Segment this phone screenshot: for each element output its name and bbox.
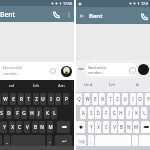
button[interactable]: Z [33,93,39,105]
staticText: A [82,110,85,116]
button[interactable]: W [2,93,8,105]
button[interactable]: Q [76,93,82,105]
button[interactable]: Call [138,10,150,22]
button[interactable]: X [95,121,101,133]
button[interactable]: Y [88,121,94,133]
button[interactable]: F [14,107,20,119]
button[interactable]: Und [76,78,100,92]
button[interactable]: S [0,107,4,119]
button[interactable]: . [132,135,138,147]
button[interactable]: D [95,107,101,119]
staticText: I [50,96,52,102]
button[interactable]: P [63,93,69,105]
button[interactable]: C [103,121,109,133]
button[interactable]: Shift [0,121,1,133]
staticText: Q [77,96,81,102]
staticText: , [6,139,8,144]
button[interactable] [139,135,150,147]
button[interactable]: Backspace [57,121,70,133]
button[interactable]: M [47,121,53,133]
button[interactable]: Emoji [48,66,58,76]
button[interactable]: . [47,135,52,147]
button[interactable]: Backspace [141,121,150,133]
button[interactable]: Back [76,10,88,22]
staticText: senden [3,71,18,77]
button[interactable]: nd [0,80,24,92]
button[interactable]: Z [114,93,120,105]
button[interactable]: I [48,93,54,105]
button[interactable]: I [130,93,136,105]
button[interactable]: L [51,107,57,119]
button[interactable]: T [107,93,113,105]
button[interactable]: Call [50,8,63,21]
button[interactable] [0,135,2,147]
button[interactable]: P [145,93,150,105]
button[interactable]: L [141,107,147,119]
button[interactable]: Y [1,121,7,133]
button[interactable]: O [55,93,61,105]
button[interactable]: N [39,121,45,133]
staticText: P [65,96,68,102]
button[interactable]: Emoji [128,66,136,74]
button[interactable]: H [118,107,124,119]
staticText: C [18,124,21,130]
button[interactable]: K [44,107,50,119]
button[interactable]: T [25,93,31,105]
button[interactable]: J [126,107,132,119]
button[interactable]: More options [63,9,74,20]
button[interactable]: S [88,107,94,119]
staticText: J [128,110,130,116]
button[interactable]: , [4,135,10,147]
button[interactable]: Attach [77,65,85,73]
button[interactable]: Voice message [138,64,149,75]
button[interactable]: Q [0,93,1,105]
staticText: F [16,110,19,116]
button[interactable]: Ich [100,78,125,92]
button[interactable]: 12@ [76,135,86,147]
button[interactable]: D [6,107,12,119]
button[interactable]: B [118,121,124,133]
button[interactable]: Enter [55,135,72,147]
button[interactable]: U [40,93,46,105]
button[interactable]: F [103,107,109,119]
button[interactable]: A [80,107,86,119]
button[interactable]: E [10,93,16,105]
button[interactable]: M [133,121,139,133]
staticText: V [113,124,116,130]
staticText: Und [84,82,93,88]
staticText: 12@ [78,139,85,144]
button[interactable]: O [137,93,143,105]
button[interactable]: B [32,121,38,133]
button[interactable]: R [99,93,105,105]
staticText: nd [9,83,15,89]
button[interactable]: N [126,121,132,133]
button[interactable]: , [88,135,94,147]
staticText: M [134,124,138,130]
button[interactable]: W [84,93,90,105]
button[interactable]: U [122,93,128,105]
button[interactable]: H [29,107,35,119]
button[interactable]: C [16,121,22,133]
button[interactable]: Am [49,80,74,92]
button[interactable]: X [9,121,15,133]
staticText: O [56,96,60,102]
button[interactable]: G [111,107,117,119]
button[interactable]: A [125,78,150,92]
button[interactable]: E [92,93,98,105]
button[interactable]: Ich [24,80,49,92]
button[interactable]: K [133,107,139,119]
staticText: W [3,96,8,102]
staticText: H [119,110,123,116]
button[interactable]: J [36,107,42,119]
button[interactable]: Voice message [61,66,72,77]
button[interactable]: R [18,93,24,105]
button[interactable] [11,135,45,147]
button[interactable]: V [24,121,30,133]
staticText: U [41,96,45,102]
button[interactable] [95,135,131,147]
button[interactable]: G [21,107,27,119]
staticText: Y [3,124,6,130]
button[interactable]: Shift [76,121,85,133]
button[interactable]: V [111,121,117,133]
staticText: Ich [109,82,116,88]
